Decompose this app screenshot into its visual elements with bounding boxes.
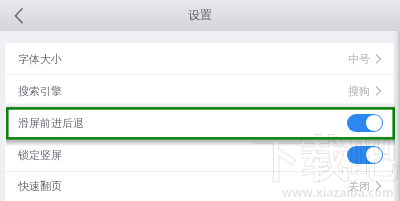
staticText: 下载吧 bbox=[253, 130, 397, 190]
button[interactable]: 字体大小 bbox=[5, 43, 394, 75]
button[interactable]: 快速翻页 bbox=[5, 171, 394, 201]
staticText: 关闭 bbox=[348, 179, 370, 193]
button[interactable]: 滑屏前进后退 bbox=[5, 107, 394, 139]
staticText: 快速翻页 bbox=[18, 179, 62, 193]
staticText: www.xiazaiba.com bbox=[282, 184, 394, 200]
staticText: 中号 bbox=[348, 52, 370, 66]
button[interactable]: Toggle bbox=[347, 114, 383, 132]
button[interactable]: Back bbox=[0, 0, 36, 31]
staticText: 锁定竖屏 bbox=[18, 148, 62, 162]
button[interactable]: 搜索引擎 bbox=[5, 75, 394, 107]
staticText: 搜索引擎 bbox=[18, 84, 62, 98]
staticText: 字体大小 bbox=[18, 52, 62, 66]
staticText: 设置 bbox=[188, 7, 212, 22]
button[interactable]: Toggle bbox=[347, 146, 383, 164]
staticText: 滑屏前进后退 bbox=[18, 116, 84, 130]
button[interactable]: 锁定竖屏 bbox=[5, 139, 394, 171]
staticText: 搜狗 bbox=[348, 84, 370, 98]
